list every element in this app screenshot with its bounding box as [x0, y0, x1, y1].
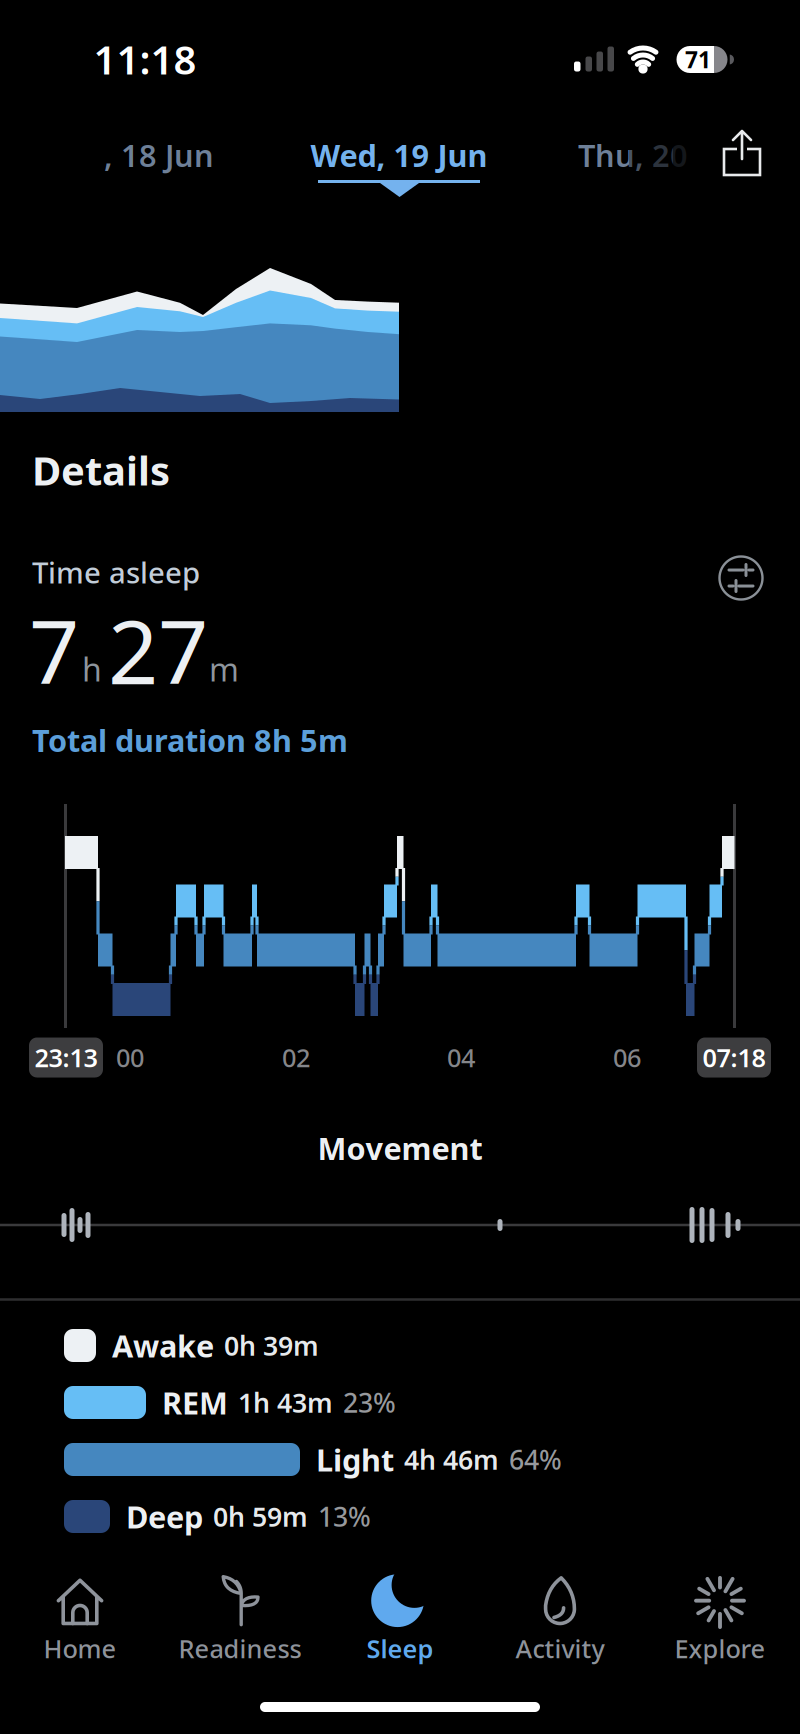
button[interactable]: Thu, 20	[578, 125, 798, 185]
staticText: Activity	[515, 1632, 604, 1665]
button[interactable]: Explore	[641, 1577, 799, 1665]
staticText: Total duration 8h 5m	[32, 720, 348, 760]
staticText: Explore	[674, 1632, 765, 1665]
staticText: 1h 43m	[238, 1385, 333, 1420]
staticText: 0h 39m	[224, 1328, 319, 1363]
staticText: 11:18	[93, 32, 196, 85]
staticText: REM	[162, 1382, 228, 1423]
staticText: 13%	[318, 1499, 371, 1534]
staticText: m	[209, 648, 239, 690]
staticText: Wed, 19 Jun	[310, 135, 487, 175]
staticText: 0h 59m	[213, 1499, 308, 1534]
staticText: 23%	[343, 1385, 396, 1420]
staticText: Awake	[112, 1325, 214, 1366]
staticText: Time asleep	[32, 552, 200, 591]
button[interactable]: Activity	[481, 1577, 639, 1665]
button[interactable]: Sleep	[321, 1577, 479, 1665]
staticText: 64%	[509, 1442, 562, 1477]
staticText: Light	[316, 1439, 394, 1480]
staticText: h	[82, 648, 102, 690]
staticText: 02	[282, 1041, 310, 1074]
button[interactable]	[718, 555, 764, 601]
button[interactable]: Wed, 19 Jun	[219, 125, 579, 185]
staticText: 27	[108, 592, 208, 708]
staticText: 04	[447, 1041, 475, 1074]
staticText: 7	[29, 592, 79, 708]
staticText: 71	[685, 44, 711, 74]
staticText: 4h 46m	[404, 1442, 499, 1477]
staticText: Sleep	[366, 1632, 433, 1665]
staticText: Deep	[126, 1496, 203, 1537]
button[interactable]: , 18 Jun	[104, 125, 364, 185]
staticText: Movement	[317, 1128, 482, 1168]
button[interactable]: Readiness	[161, 1577, 319, 1665]
staticText: Details	[32, 443, 170, 496]
staticText: , 18 Jun	[104, 135, 214, 175]
button[interactable]: Home	[1, 1577, 159, 1665]
staticText: 23:13	[34, 1041, 97, 1074]
staticText: 06	[613, 1041, 641, 1074]
staticText: Thu, 20	[578, 135, 688, 175]
button[interactable]	[721, 129, 763, 177]
staticText: Home	[43, 1632, 116, 1665]
staticText: Readiness	[178, 1632, 301, 1665]
staticText: 07:18	[702, 1041, 765, 1074]
staticText: 00	[116, 1041, 144, 1074]
